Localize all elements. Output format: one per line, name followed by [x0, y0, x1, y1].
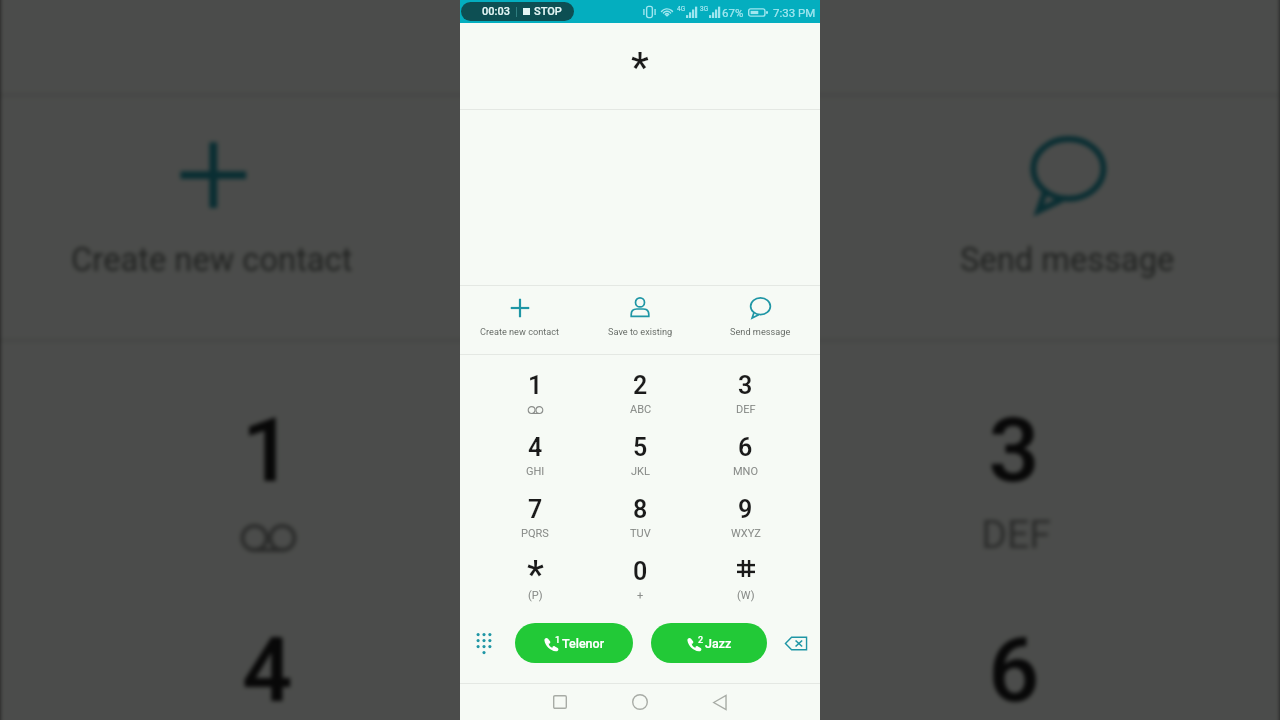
- staticText: 1: [242, 399, 295, 502]
- button[interactable]: 8: [588, 479, 693, 541]
- staticText: +: [637, 589, 644, 602]
- staticText: 7:33 PM: [773, 6, 816, 19]
- staticText: Create new contact: [71, 239, 355, 278]
- staticText: Jazz: [705, 636, 732, 651]
- staticText: JKL: [631, 465, 650, 478]
- staticText: WXYZ: [731, 527, 761, 540]
- staticText: 1: [555, 635, 561, 646]
- staticText: 2: [698, 635, 704, 646]
- staticText: *: [631, 44, 649, 91]
- staticText: DEF: [981, 513, 1052, 559]
- button[interactable]: 2: [455, 342, 828, 563]
- button[interactable]: 4: [482, 417, 588, 479]
- button[interactable]: Recents: [534, 684, 586, 720]
- staticText: 2: [615, 399, 668, 502]
- button[interactable]: Create new contact: [460, 286, 580, 354]
- button[interactable]: 3: [693, 355, 798, 417]
- staticText: DEF: [736, 403, 756, 416]
- staticText: ABC: [630, 403, 652, 416]
- button[interactable]: Home: [614, 684, 666, 720]
- button[interactable]: *: [482, 541, 588, 603]
- button[interactable]: 2: [651, 623, 767, 663]
- staticText: 4: [242, 620, 295, 720]
- button[interactable]: Save to existing: [427, 97, 853, 339]
- staticText: STOP: [534, 5, 562, 18]
- button[interactable]: Create new contact: [0, 97, 427, 339]
- staticText: Send message: [730, 326, 791, 337]
- staticText: 5: [615, 620, 668, 720]
- button[interactable]: 7: [482, 479, 588, 541]
- button[interactable]: Send message: [700, 286, 820, 354]
- staticText: 6: [988, 620, 1042, 720]
- staticText: 4: [528, 433, 543, 462]
- button[interactable]: 5: [455, 563, 828, 720]
- staticText: 67%: [722, 6, 744, 19]
- button[interactable]: (W): [693, 541, 798, 603]
- button[interactable]: Keypad: [471, 627, 497, 659]
- button[interactable]: Send message: [853, 97, 1280, 339]
- staticText: Create new contact: [480, 326, 560, 337]
- staticText: 5: [633, 433, 648, 462]
- button[interactable]: 2: [588, 355, 693, 417]
- staticText: 0: [633, 557, 648, 586]
- button[interactable]: 1: [482, 355, 588, 417]
- button[interactable]: 5: [588, 417, 693, 479]
- staticText: ABC: [604, 513, 683, 559]
- staticText: 3G: [700, 5, 709, 13]
- staticText: GHI: [526, 465, 545, 478]
- staticText: 7: [528, 495, 543, 524]
- staticText: 6: [738, 433, 753, 462]
- staticText: Save to existing: [608, 326, 673, 337]
- staticText: Send message: [960, 239, 1177, 278]
- button[interactable]: 0: [588, 541, 693, 603]
- staticText: 2: [633, 371, 648, 400]
- staticText: (P): [528, 589, 543, 602]
- button[interactable]: 6: [693, 417, 798, 479]
- staticText: 3: [738, 371, 753, 400]
- button[interactable]: 9: [693, 479, 798, 541]
- staticText: *: [527, 553, 544, 598]
- staticText: TUV: [630, 527, 651, 540]
- button[interactable]: Stop screen recording: [461, 2, 574, 21]
- staticText: 1: [528, 371, 543, 400]
- button[interactable]: Backspace: [782, 631, 810, 655]
- staticText: MNO: [733, 465, 759, 478]
- staticText: (W): [737, 589, 755, 602]
- staticText: Telenor: [562, 636, 605, 651]
- button[interactable]: 6: [828, 563, 1202, 720]
- staticText: 9: [738, 495, 753, 524]
- staticText: 00:03: [482, 5, 510, 18]
- button[interactable]: Save to existing: [580, 286, 700, 354]
- button[interactable]: 4: [78, 563, 455, 720]
- button[interactable]: 1: [78, 342, 455, 563]
- button[interactable]: 3: [828, 342, 1202, 563]
- staticText: 3: [988, 399, 1042, 502]
- button[interactable]: 1: [515, 623, 633, 663]
- staticText: PQRS: [521, 527, 549, 540]
- staticText: 4G: [677, 5, 686, 13]
- staticText: 8: [633, 495, 648, 524]
- button[interactable]: Back: [694, 684, 746, 720]
